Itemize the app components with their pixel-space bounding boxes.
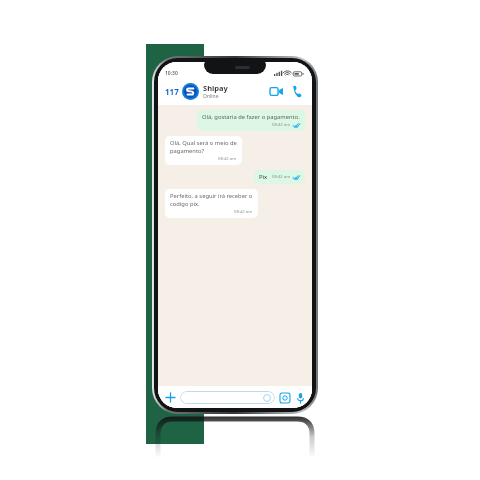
staticText: Olá, gostaria de fazer o pagamento.	[202, 113, 300, 121]
button[interactable]: Voice message	[294, 391, 307, 404]
staticText: 08:42 am	[272, 174, 291, 180]
button[interactable]	[180, 391, 275, 404]
button[interactable]: Video call	[268, 83, 284, 99]
button[interactable]: Olá, Qual será o meio de pagamento?	[165, 136, 242, 165]
staticText: Olá, Qual será o meio de pagamento?	[170, 139, 237, 155]
staticText: 117	[165, 86, 179, 97]
staticText: 08:42 am	[218, 156, 237, 162]
button[interactable]: Pix	[254, 170, 305, 184]
staticText: 08:42 am	[234, 209, 253, 215]
staticText: Perfeito, a seguir irá receber o codigo …	[170, 192, 253, 208]
button[interactable]: Olá, gostaria de fazer o pagamento.	[197, 110, 305, 131]
button[interactable]: Perfeito, a seguir irá receber o codigo …	[165, 189, 258, 218]
button[interactable]: Voice call	[289, 83, 305, 99]
button[interactable]: Attach	[163, 390, 177, 404]
staticText: Online	[203, 93, 219, 100]
button[interactable]: Shipay profile	[182, 83, 199, 100]
staticText: 08:42 am	[272, 122, 291, 128]
staticText: 10:30	[165, 70, 178, 77]
staticText: Shipay	[203, 83, 228, 93]
button[interactable]: Camera	[278, 391, 291, 404]
staticText: Pix	[259, 173, 268, 181]
